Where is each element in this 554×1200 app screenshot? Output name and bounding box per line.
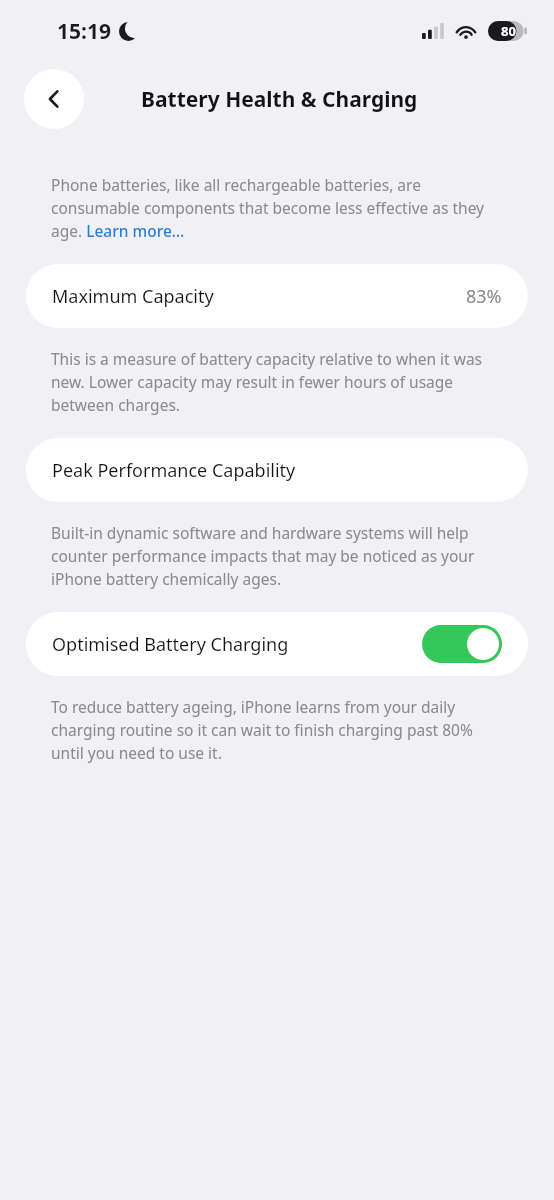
staticText: 15:19 — [57, 17, 111, 46]
staticText: Battery Health & Charging — [141, 85, 418, 114]
staticText: Optimised Battery Charging — [52, 632, 422, 657]
staticText: Built-in dynamic software and hardware s… — [51, 522, 504, 590]
button[interactable]: Back — [24, 69, 84, 129]
staticText: Maximum Capacity — [52, 284, 466, 309]
button[interactable]: Maximum Capacity — [26, 264, 528, 328]
button[interactable]: Optimised Battery Charging toggle, on — [422, 625, 502, 663]
button[interactable]: Peak Performance Capability — [26, 438, 528, 502]
button[interactable]: Optimised Battery Charging — [26, 612, 528, 676]
staticText: Phone batteries, like all rechargeable b… — [51, 174, 494, 242]
staticText: 83% — [466, 284, 502, 309]
staticText: This is a measure of battery capacity re… — [51, 348, 504, 416]
staticText: 80 — [501, 22, 516, 40]
staticText: Peak Performance Capability — [52, 458, 502, 483]
staticText: To reduce battery ageing, iPhone learns … — [51, 696, 504, 764]
